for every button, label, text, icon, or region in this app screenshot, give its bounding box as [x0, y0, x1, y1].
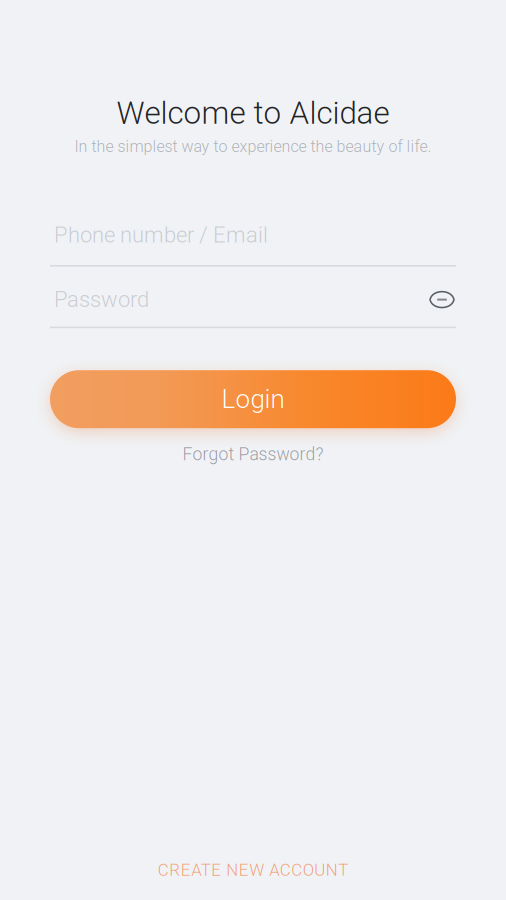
staticText: CREATE NEW ACCOUNT	[158, 860, 348, 880]
button[interactable]: Show password	[421, 283, 456, 317]
staticText: Password	[54, 287, 149, 312]
staticText: In the simplest way to experience the be…	[74, 137, 431, 156]
staticText: Welcome to Alcidae	[116, 95, 389, 131]
staticText: Forgot Password?	[182, 444, 323, 464]
button[interactable]: Login	[50, 370, 456, 428]
staticText: Login	[221, 384, 284, 414]
button[interactable]: CREATE NEW ACCOUNT	[123, 858, 383, 882]
button[interactable]: Forgot Password?	[153, 442, 353, 466]
staticText: Phone number / Email	[54, 222, 268, 248]
